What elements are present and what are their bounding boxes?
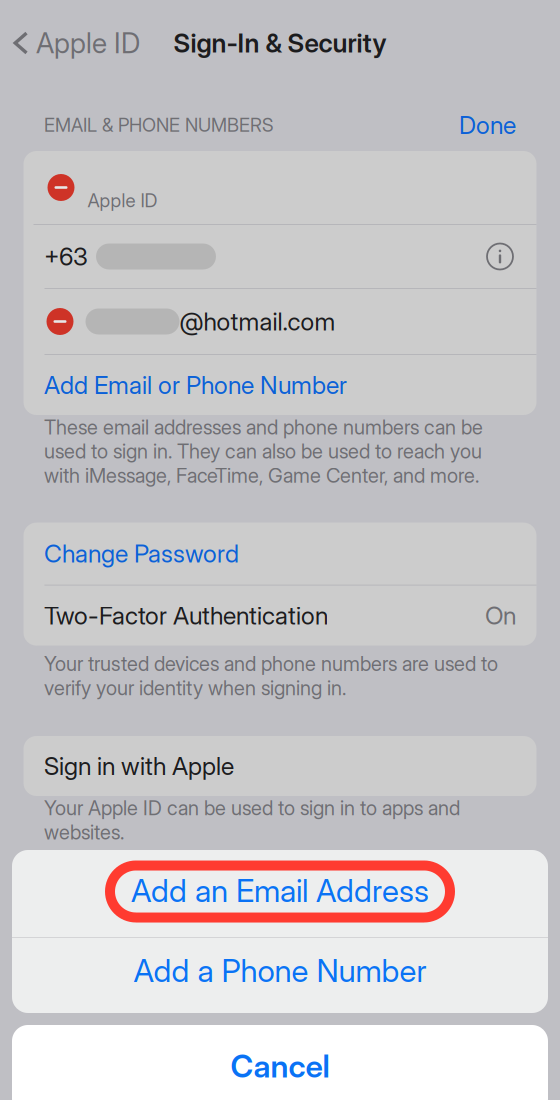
staticText: Add a Phone Number [133, 951, 426, 989]
staticText: @hotmail.com [179, 307, 335, 336]
staticText: Add an Email Address [131, 871, 429, 909]
staticText: Sign in with Apple [44, 751, 234, 781]
staticText: EMAIL & PHONE NUMBERS [44, 114, 273, 136]
staticText: Your Apple ID can be used to sign in to … [44, 796, 460, 844]
staticText: +63 [44, 242, 88, 271]
button[interactable]: Two-Factor Authentication [23, 586, 536, 646]
staticText: These email addresses and phone numbers … [44, 415, 483, 488]
button[interactable]: Add a Phone Number [12, 938, 548, 1013]
staticText: Apple ID [36, 26, 140, 60]
button[interactable]: Apple ID [0, 0, 150, 86]
button[interactable]: Sign in with Apple [23, 736, 536, 796]
staticText: Sign-In & Security [173, 27, 386, 59]
button[interactable]: Cancel [12, 1025, 548, 1100]
staticText: Change Password [44, 539, 239, 568]
staticText: Apple ID [87, 189, 157, 212]
staticText: Add Email or Phone Number [44, 370, 347, 400]
button[interactable]: Add Email or Phone Number [23, 355, 536, 415]
staticText: Cancel [230, 1047, 329, 1085]
button[interactable]: Phone number information [487, 243, 513, 269]
button[interactable]: Change Password [23, 523, 536, 585]
staticText: Done [459, 110, 516, 140]
staticText: On [485, 601, 516, 630]
staticText: Two-Factor Authentication [44, 601, 328, 630]
button[interactable]: Done [459, 110, 516, 140]
staticText: Your trusted devices and phone numbers a… [44, 652, 498, 700]
button[interactable]: Add an Email Address [12, 850, 548, 937]
